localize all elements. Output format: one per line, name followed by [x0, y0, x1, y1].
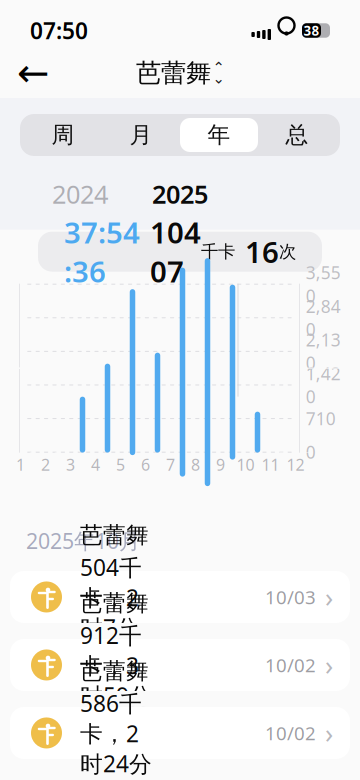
staticText: 7: [166, 454, 175, 475]
staticText: 5: [116, 454, 125, 475]
staticText: 8: [191, 454, 200, 475]
staticText: 芭蕾舞: [136, 57, 211, 88]
staticText: 2,840: [306, 295, 341, 341]
staticText: 07:50: [30, 15, 88, 45]
staticText: 4: [91, 454, 100, 475]
staticText: 芭蕾舞: [80, 521, 149, 549]
staticText: ⌄: [212, 70, 224, 87]
staticText: ›: [325, 715, 333, 751]
staticText: 年: [207, 121, 230, 149]
button[interactable]: Back: [10, 50, 56, 96]
staticText: 2025: [152, 177, 208, 211]
staticText: 912千卡，3时59分21秒: [80, 620, 152, 741]
staticText: 10/02: [265, 653, 316, 677]
staticText: 504千卡，2时7分33秒: [80, 552, 142, 673]
staticText: 710: [306, 407, 336, 430]
staticText: 10407: [150, 213, 201, 291]
staticText: ›: [325, 579, 333, 615]
staticText: ›: [325, 647, 333, 683]
button[interactable]: 芭蕾舞: [128, 50, 232, 96]
staticText: 3: [66, 454, 75, 475]
staticText: ⌃: [212, 59, 224, 76]
staticText: 0: [306, 441, 316, 464]
staticText: 9: [216, 454, 225, 475]
staticText: 10/02: [265, 721, 316, 745]
staticText: 37:54:36: [64, 213, 140, 291]
staticText: 38: [303, 22, 319, 39]
staticText: 2: [41, 454, 50, 475]
staticText: 586千卡，2时24分22秒: [80, 688, 152, 780]
button[interactable]: 月: [102, 118, 180, 152]
button[interactable]: 总: [258, 118, 336, 152]
staticText: 1,420: [306, 362, 341, 408]
staticText: 月: [129, 121, 152, 149]
staticText: 周: [51, 121, 74, 149]
staticText: 12: [286, 454, 304, 475]
staticText: 2024: [52, 177, 108, 211]
staticText: 10/03: [265, 585, 316, 609]
staticText: 芭蕾舞: [80, 657, 149, 685]
staticText: ←: [17, 51, 49, 95]
staticText: 11: [261, 454, 279, 475]
staticText: 2,130: [306, 328, 341, 374]
button[interactable]: 周: [24, 118, 102, 152]
staticText: 2025年10月: [26, 527, 140, 555]
button[interactable]: 年: [180, 118, 258, 152]
button[interactable]: 2025: [140, 170, 220, 218]
staticText: 6: [141, 454, 150, 475]
button[interactable]: 2024: [40, 170, 120, 218]
staticText: 16: [245, 232, 279, 271]
staticText: 芭蕾舞: [80, 589, 149, 617]
staticText: 3,550: [306, 261, 341, 307]
button[interactable]: 芭蕾舞: [0, 707, 360, 759]
staticText: 1: [16, 454, 25, 475]
staticText: 次: [279, 241, 296, 262]
staticText: 千卡: [201, 241, 235, 262]
staticText: 总: [285, 121, 308, 149]
button[interactable]: 芭蕾舞: [0, 571, 360, 623]
button[interactable]: 芭蕾舞: [0, 639, 360, 691]
staticText: 10: [236, 454, 254, 475]
